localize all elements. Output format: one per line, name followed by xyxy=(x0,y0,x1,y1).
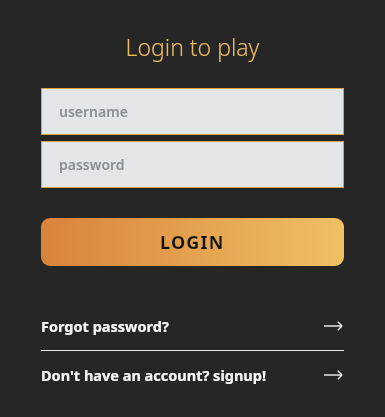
staticText: LOGIN xyxy=(160,230,225,255)
staticText: Forgot password? xyxy=(41,316,324,336)
button[interactable]: Don't have an account? signup! xyxy=(41,351,344,399)
button[interactable]: username xyxy=(41,88,344,135)
staticText: password xyxy=(59,155,125,174)
button[interactable]: Forgot password? xyxy=(41,302,344,350)
button[interactable]: password xyxy=(41,141,344,188)
other: Forgot password xyxy=(324,320,342,332)
staticText: username xyxy=(59,102,128,121)
staticText: Don't have an account? signup! xyxy=(41,365,324,385)
button[interactable]: LOGIN xyxy=(41,218,344,266)
other: Sign up xyxy=(324,369,342,381)
staticText: Login to play xyxy=(41,31,344,62)
